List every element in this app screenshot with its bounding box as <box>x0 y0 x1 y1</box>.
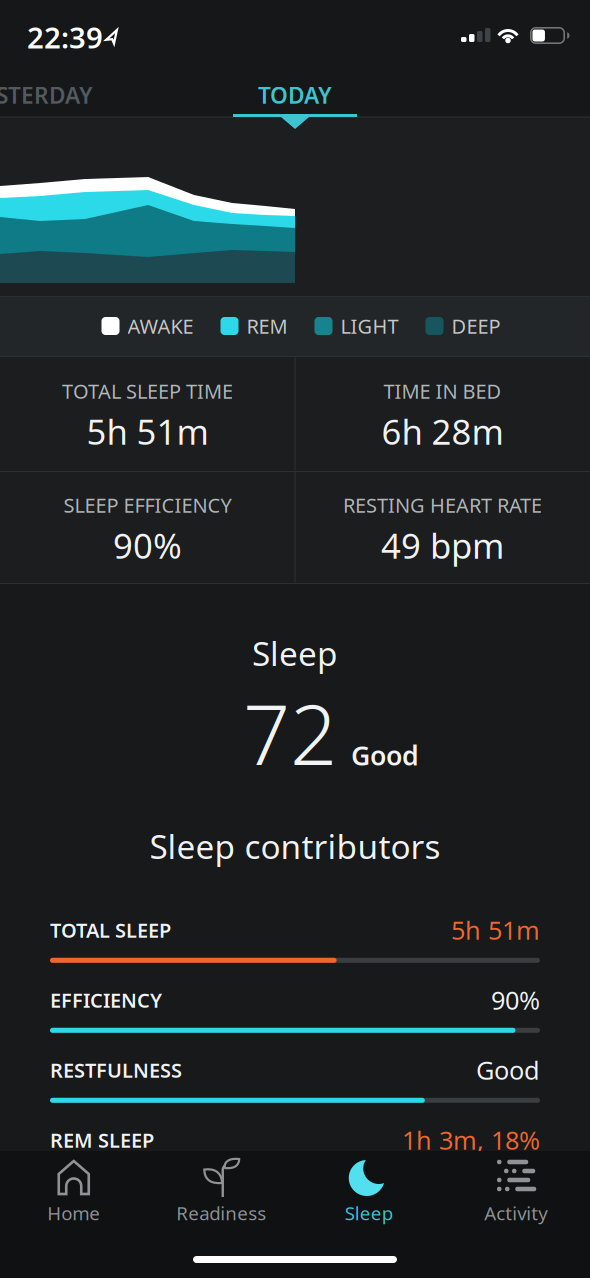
staticText: Readiness <box>176 1201 266 1225</box>
staticText: REM SLEEP <box>50 1127 154 1153</box>
button[interactable]: YESTERDAY <box>0 75 97 115</box>
staticText: EFFICIENCY <box>50 987 162 1013</box>
staticText: TOTAL SLEEP <box>50 917 171 943</box>
staticText: 6h 28m <box>381 408 503 454</box>
staticText: 90% <box>113 522 182 568</box>
staticText: REM <box>246 313 287 339</box>
staticText: 72 <box>243 678 337 788</box>
staticText: Good <box>351 737 419 773</box>
staticText: AWAKE <box>127 313 193 339</box>
staticText: Home <box>47 1201 100 1225</box>
staticText: 49 bpm <box>381 522 504 568</box>
staticText: Sleep contributors <box>149 824 440 868</box>
staticText: 1h 3m, 18% <box>402 1123 540 1157</box>
staticText: DEEP <box>451 313 500 339</box>
staticText: 90% <box>491 983 540 1017</box>
staticText: TOTAL SLEEP TIME <box>62 378 233 404</box>
staticText: Good <box>476 1053 540 1087</box>
staticText: Sleep <box>345 1201 393 1225</box>
staticText: Activity <box>484 1201 548 1225</box>
staticText: TODAY <box>258 80 332 110</box>
button[interactable]: Readiness <box>147 1151 295 1241</box>
staticText: 5h 51m <box>451 913 540 947</box>
staticText: TIME IN BED <box>383 378 501 404</box>
staticText: SLEEP EFFICIENCY <box>63 492 231 518</box>
staticText: RESTFULNESS <box>50 1057 182 1083</box>
staticText: Sleep <box>252 631 338 675</box>
button[interactable]: Home <box>0 1151 147 1241</box>
staticText: YESTERDAY <box>0 80 93 110</box>
staticText: LIGHT <box>340 313 398 339</box>
button[interactable]: Sleep <box>295 1151 442 1241</box>
staticText: RESTING HEART RATE <box>343 492 542 518</box>
staticText: 22:39 <box>27 17 103 56</box>
button[interactable]: Activity <box>442 1151 590 1241</box>
button[interactable]: TODAY <box>233 75 357 115</box>
staticText: 5h 51m <box>86 408 208 454</box>
